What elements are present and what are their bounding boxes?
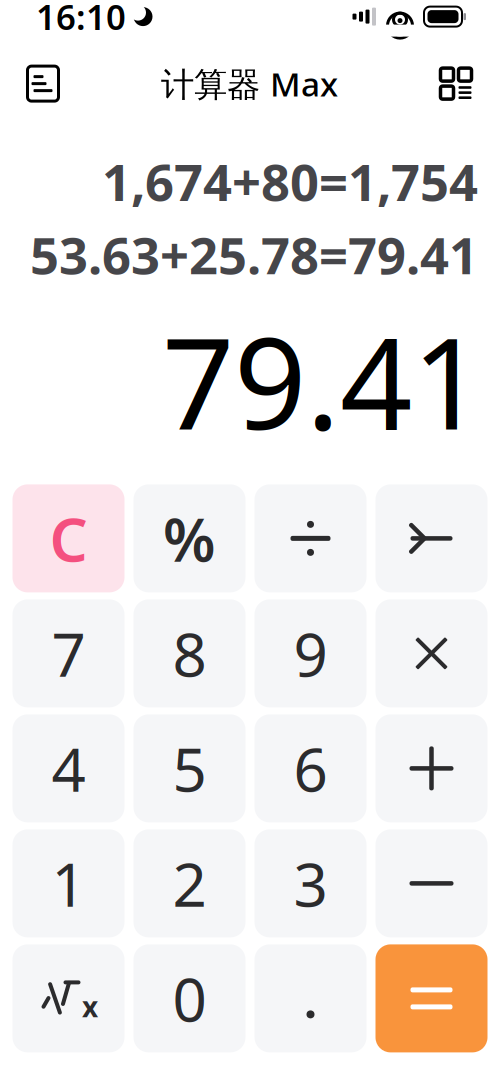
button[interactable]: Divide: [254, 484, 366, 592]
button[interactable]: 1: [12, 829, 124, 937]
button[interactable]: History: [13, 54, 73, 114]
staticText: 3: [293, 843, 327, 923]
button[interactable]: C: [12, 484, 124, 592]
button[interactable]: 0: [133, 944, 245, 1052]
button[interactable]: 7: [12, 599, 124, 707]
button[interactable]: %: [133, 484, 245, 592]
button[interactable]: 6: [254, 714, 366, 822]
staticText: C: [49, 498, 87, 578]
staticText: %: [163, 498, 216, 578]
button[interactable]: Multiply: [375, 599, 487, 707]
button[interactable]: 2: [133, 829, 245, 937]
button[interactable]: Equals: [375, 944, 487, 1052]
staticText: 8: [172, 613, 206, 693]
button[interactable]: 3: [254, 829, 366, 937]
staticText: 0: [172, 958, 206, 1038]
staticText: 2: [172, 843, 206, 923]
button[interactable]: 5: [133, 714, 245, 822]
button[interactable]: 8: [133, 599, 245, 707]
button[interactable]: 4: [12, 714, 124, 822]
button[interactable]: Decimal point: [254, 944, 366, 1052]
button[interactable]: Minus: [375, 829, 487, 937]
staticText: 7: [51, 613, 85, 693]
staticText: 79.41: [162, 296, 484, 464]
staticText: 9: [293, 613, 327, 693]
staticText: 6: [293, 728, 327, 808]
button[interactable]: 9: [254, 599, 366, 707]
button[interactable]: Plus: [375, 714, 487, 822]
staticText: 4: [51, 728, 85, 808]
staticText: 5: [172, 728, 206, 808]
staticText: 计算器 Max: [161, 61, 338, 106]
staticText: 1,674+80=1,754: [102, 148, 478, 215]
staticText: 53.63+25.78=79.41: [30, 221, 478, 288]
staticText: 16:10: [36, 0, 126, 40]
staticText: x: [82, 988, 98, 1025]
staticText: 1: [51, 843, 85, 923]
button[interactable]: Scan: [426, 54, 486, 114]
button[interactable]: Square root: [12, 944, 124, 1052]
button[interactable]: Backspace: [375, 484, 487, 592]
